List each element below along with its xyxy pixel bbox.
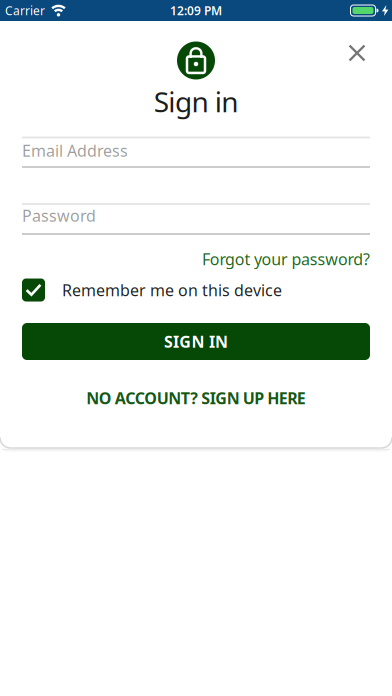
staticText: 12:09 PM bbox=[170, 2, 222, 18]
button[interactable]: NO ACCOUNT? SIGN UP HERE bbox=[86, 387, 306, 409]
staticText: Sign in bbox=[154, 83, 238, 120]
staticText: Password bbox=[22, 205, 96, 226]
staticText: SIGN IN bbox=[164, 331, 228, 352]
button[interactable]: Password bbox=[22, 200, 370, 230]
staticText: NO ACCOUNT? SIGN UP HERE bbox=[86, 387, 306, 409]
staticText: Carrier bbox=[5, 2, 45, 18]
button[interactable]: SIGN IN bbox=[22, 323, 370, 360]
staticText: Forgot your password? bbox=[202, 248, 370, 270]
button[interactable]: Remember me on this device bbox=[22, 277, 370, 303]
button[interactable]: Close bbox=[341, 37, 373, 69]
staticText: Remember me on this device bbox=[62, 279, 282, 301]
staticText: Email Address bbox=[22, 140, 128, 161]
button[interactable]: Forgot your password? bbox=[22, 248, 370, 270]
button[interactable]: Email Address bbox=[22, 135, 370, 165]
